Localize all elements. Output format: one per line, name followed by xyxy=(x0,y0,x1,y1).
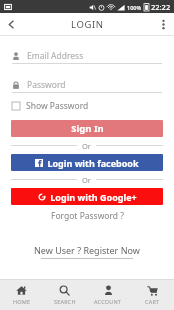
button[interactable]: SEARCH xyxy=(43,280,86,310)
staticText: Or xyxy=(82,175,91,185)
staticText: 100% xyxy=(127,4,142,11)
button[interactable]: Login with facebook xyxy=(11,154,163,171)
button[interactable]: More options xyxy=(152,13,174,35)
staticText: HOME xyxy=(13,298,31,305)
staticText: Sign In xyxy=(71,122,104,135)
button[interactable]: ACCOUNT xyxy=(86,280,130,310)
staticText: Login with facebook xyxy=(47,157,139,169)
button[interactable]: Show Password xyxy=(12,100,89,112)
staticText: Show Password xyxy=(26,100,89,112)
button[interactable]: New User ? Register Now xyxy=(34,244,140,259)
button[interactable]: Email Address xyxy=(12,48,162,63)
button[interactable]: HOME xyxy=(0,280,43,310)
staticText: New User ? Register Now xyxy=(34,244,140,256)
staticText: 22:22 xyxy=(151,2,171,12)
button[interactable]: CART xyxy=(130,280,174,310)
button[interactable]: Sign In xyxy=(11,120,163,137)
button[interactable]: Back xyxy=(0,13,22,35)
staticText: LOGIN xyxy=(71,18,104,31)
button[interactable]: Forgot Password ? xyxy=(0,210,174,222)
staticText: Login with Google+ xyxy=(50,191,137,203)
button[interactable]: Login with Google+ xyxy=(11,188,163,205)
staticText: Email Address xyxy=(27,50,84,62)
button[interactable]: Password xyxy=(12,77,162,92)
staticText: Or xyxy=(82,141,91,151)
staticText: Forgot Password ? xyxy=(51,210,124,222)
staticText: ACCOUNT xyxy=(94,298,122,305)
staticText: SEARCH xyxy=(54,298,76,305)
staticText: CART xyxy=(145,298,160,305)
staticText: Password xyxy=(27,79,66,91)
